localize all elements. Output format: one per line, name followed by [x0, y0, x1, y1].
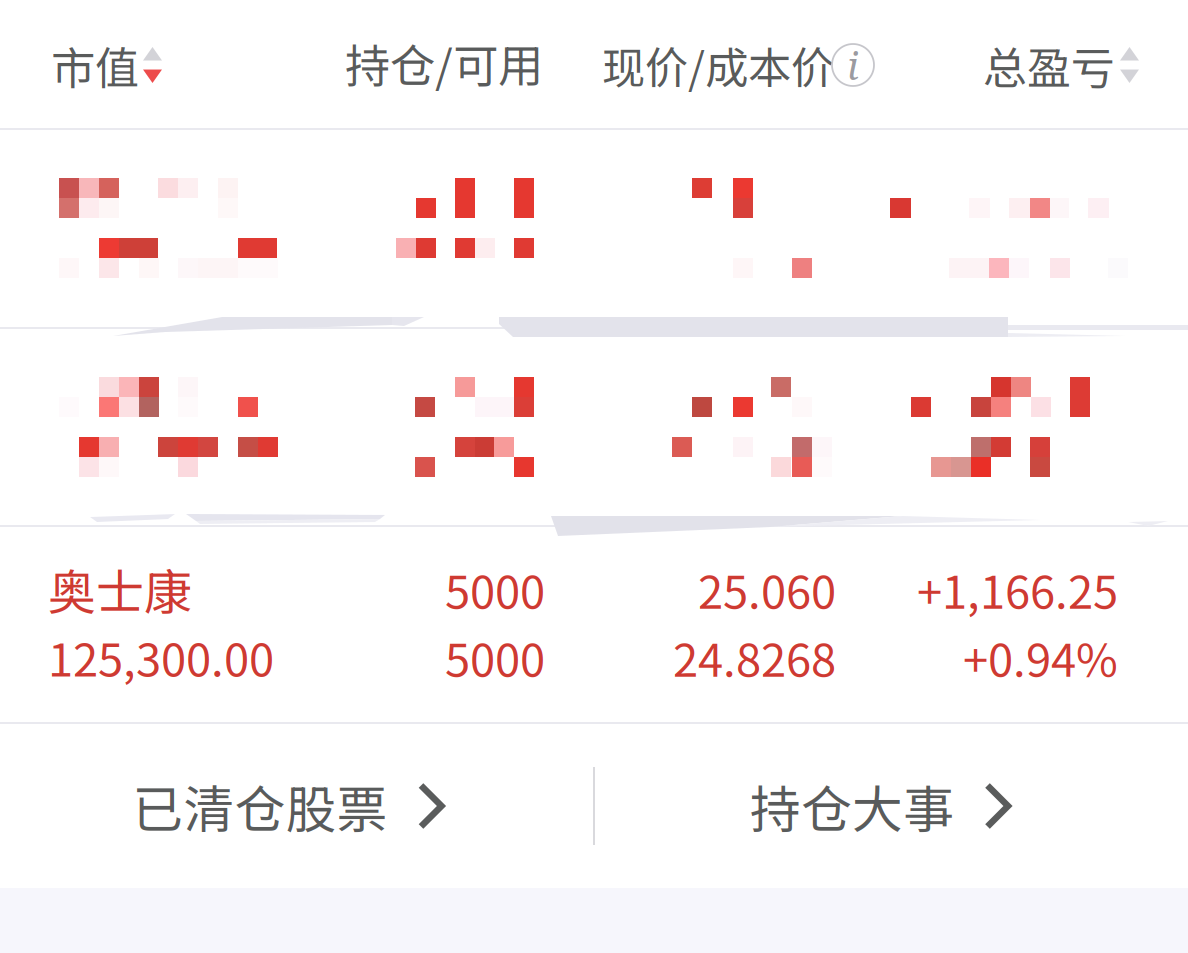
staticText: i — [847, 39, 859, 91]
staticText: 5000 — [445, 556, 545, 622]
staticText: 已清仓股票 — [132, 769, 387, 843]
button[interactable]: 持仓大事 — [594, 724, 1188, 888]
staticText: +1,166.25 — [917, 556, 1118, 622]
staticText: 25.060 — [698, 556, 836, 622]
staticText: 市值 — [51, 33, 139, 97]
staticText: 5000 — [445, 624, 545, 690]
button[interactable]: 总盈亏 — [975, 28, 1147, 102]
staticText: 现价/成本价 — [602, 34, 834, 96]
staticText: +0.94% — [963, 624, 1118, 690]
button[interactable]: 已清仓股票 — [0, 724, 594, 888]
button[interactable]: 市值 — [43, 28, 170, 102]
staticText: 持仓/可用 — [345, 30, 543, 96]
staticText: 持仓大事 — [750, 769, 954, 843]
staticText: 24.8268 — [673, 624, 836, 690]
staticText: 125,300.00 — [48, 624, 274, 690]
staticText: 奥士康 — [48, 554, 192, 623]
staticText: 总盈亏 — [983, 33, 1115, 97]
button[interactable]: 现价/成本价 — [602, 28, 874, 102]
button[interactable]: 奥士康 — [0, 527, 1188, 722]
